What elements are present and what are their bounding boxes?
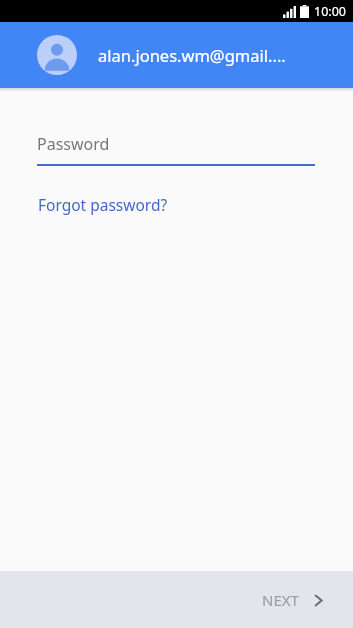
other: Next (312, 594, 325, 607)
button[interactable]: NEXT (252, 582, 335, 618)
button[interactable]: Password (0, 133, 353, 166)
staticText: Forgot password? (38, 194, 168, 215)
staticText: NEXT (262, 590, 299, 610)
button[interactable]: alan.jones.wm@gmail.... (0, 22, 353, 88)
staticText: 10:00 (314, 3, 346, 20)
button[interactable]: Forgot password? (37, 192, 169, 217)
staticText: alan.jones.wm@gmail.... (98, 44, 286, 66)
staticText: Password (37, 133, 110, 155)
